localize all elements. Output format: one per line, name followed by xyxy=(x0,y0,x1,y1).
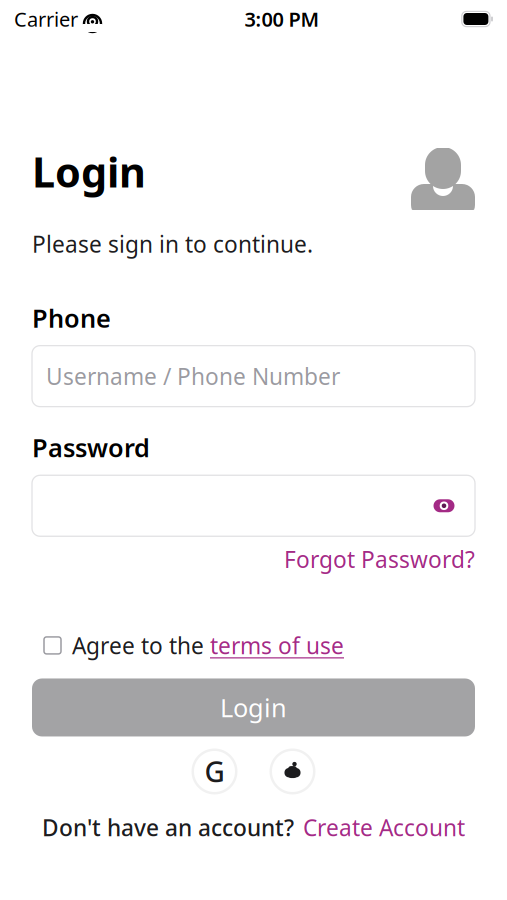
staticText: Forgot Password? xyxy=(284,544,475,574)
staticText: Password xyxy=(32,431,150,464)
staticText: Please sign in to continue. xyxy=(32,229,313,259)
staticText: Phone xyxy=(32,301,111,335)
button[interactable]: Agree to the xyxy=(44,630,344,660)
staticText: Agree to the xyxy=(72,630,210,660)
staticText: Login xyxy=(220,691,287,724)
staticText: Username / Phone Number xyxy=(46,361,340,391)
button[interactable]: Forgot Password? xyxy=(284,544,475,574)
staticText: Create Account xyxy=(303,812,465,843)
staticText: G xyxy=(204,753,224,790)
button[interactable]: Show password xyxy=(427,489,461,523)
button[interactable]: Login xyxy=(32,678,475,736)
staticText: Login xyxy=(32,144,146,199)
staticText: 3:00 PM xyxy=(244,6,319,32)
button[interactable]: Sign in with Google xyxy=(189,746,239,796)
staticText: Don't have an account? xyxy=(42,812,294,843)
staticText: Carrier xyxy=(14,6,78,32)
staticText: terms of use xyxy=(210,630,344,660)
button[interactable]: Sign in with Apple xyxy=(267,746,317,796)
button[interactable]: Create Account xyxy=(303,812,465,843)
